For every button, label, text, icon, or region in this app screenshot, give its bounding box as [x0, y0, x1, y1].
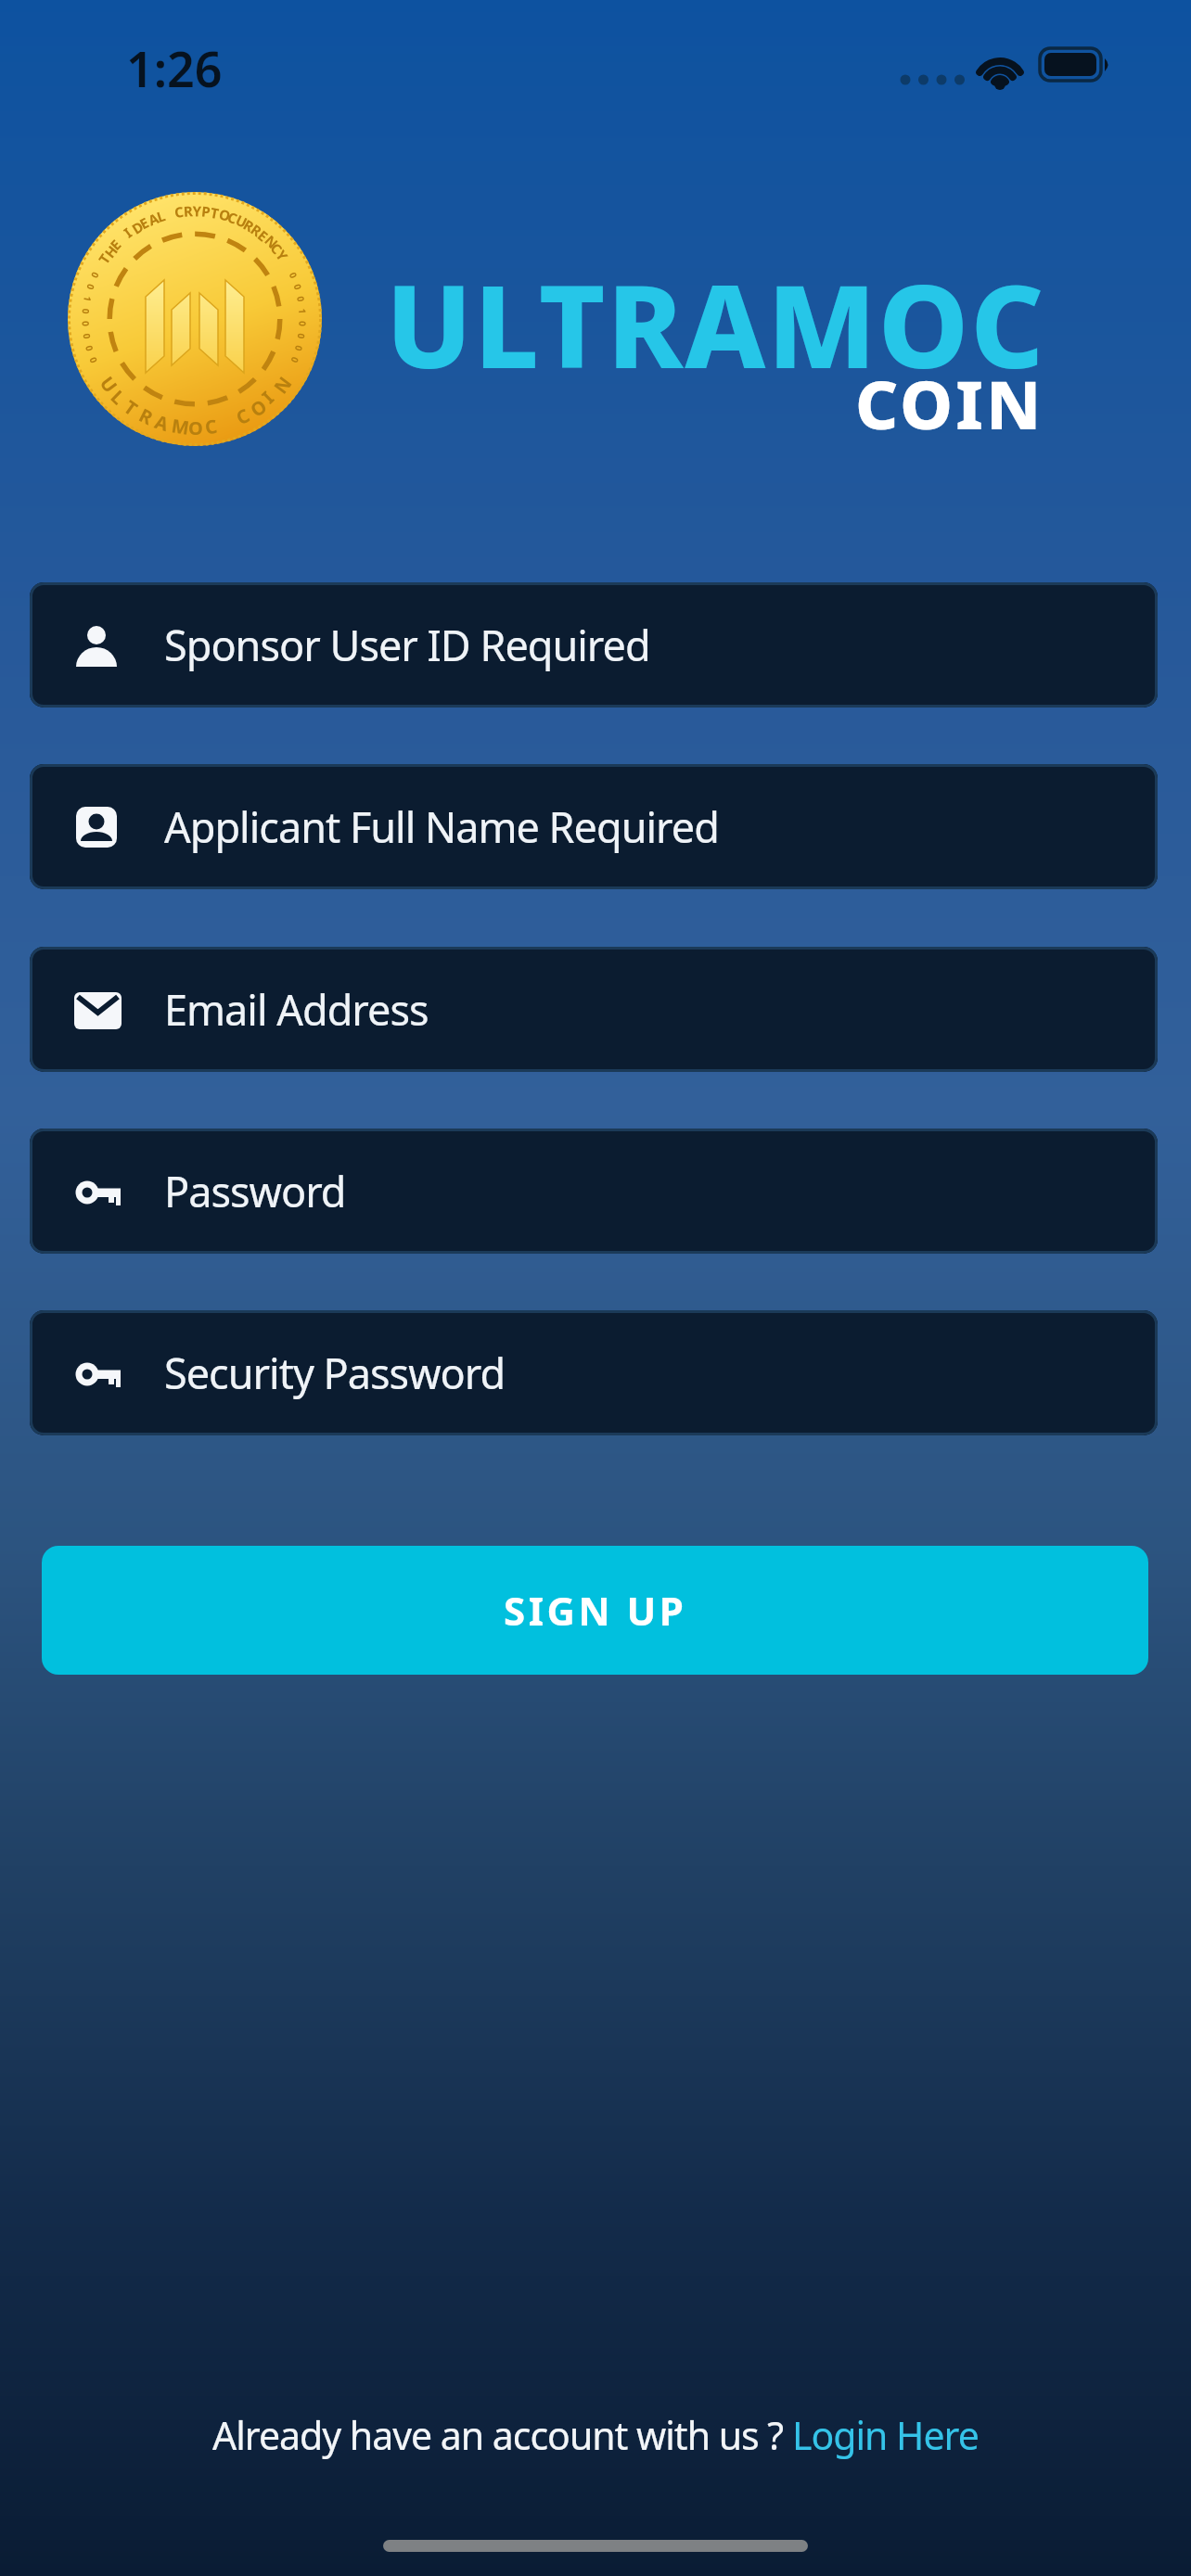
- button[interactable]: Password: [30, 1129, 1158, 1254]
- staticText: 1: [296, 308, 309, 315]
- staticText: COIN: [855, 358, 1044, 449]
- staticText: E: [254, 226, 273, 245]
- staticText: 0: [295, 332, 308, 340]
- staticText: O: [217, 204, 233, 225]
- staticText: 0: [79, 321, 92, 327]
- staticText: L: [154, 206, 168, 226]
- staticText: 0: [83, 344, 97, 353]
- button[interactable]: Applicant Full Name Required: [30, 764, 1158, 889]
- staticText: Security Password: [164, 1345, 506, 1401]
- staticText: R: [247, 220, 266, 240]
- staticText: 0: [88, 270, 102, 281]
- staticText: C: [225, 207, 240, 228]
- staticText: T: [209, 203, 221, 223]
- staticText: 0: [84, 282, 98, 292]
- staticText: U: [95, 371, 124, 398]
- staticText: C: [203, 413, 219, 440]
- staticText: Email Address: [164, 981, 429, 1038]
- staticText: C: [232, 403, 254, 430]
- staticText: R: [183, 201, 193, 221]
- staticText: 1:26: [126, 35, 223, 101]
- staticText: 0: [87, 355, 101, 365]
- button[interactable]: Security Password: [30, 1310, 1158, 1435]
- staticText: A: [145, 208, 162, 230]
- staticText: N: [261, 231, 283, 253]
- staticText: Y: [192, 201, 202, 220]
- staticText: 0: [79, 308, 93, 315]
- staticText: Password: [164, 1163, 346, 1219]
- staticText: E: [106, 235, 125, 254]
- staticText: O: [188, 415, 203, 440]
- staticText: Already have an account with us ?: [212, 2409, 792, 2461]
- staticText: E: [136, 213, 152, 233]
- staticText: R: [240, 215, 258, 236]
- staticText: 0: [296, 321, 309, 327]
- staticText: 1: [81, 295, 95, 303]
- staticText: T: [119, 395, 143, 421]
- staticText: I: [120, 223, 135, 241]
- staticText: SIGN UP: [504, 1584, 687, 1637]
- staticText: R: [135, 402, 158, 431]
- staticText: Login Here: [792, 2409, 979, 2461]
- button[interactable]: SIGN UP: [42, 1546, 1148, 1675]
- staticText: L: [106, 384, 131, 410]
- staticText: 0: [80, 332, 94, 340]
- staticText: H: [100, 241, 122, 261]
- staticText: N: [268, 371, 298, 399]
- button[interactable]: Email Address: [30, 947, 1158, 1072]
- button[interactable]: Sponsor User ID Required: [30, 582, 1158, 708]
- staticText: I: [256, 386, 279, 409]
- staticText: 0: [288, 355, 302, 365]
- staticText: C: [173, 202, 185, 222]
- staticText: M: [170, 413, 191, 440]
- staticText: ULTRAMOC: [386, 247, 1046, 402]
- staticText: Y: [272, 246, 293, 265]
- staticText: 0: [286, 270, 301, 281]
- staticText: 0: [294, 295, 308, 303]
- staticText: T: [94, 250, 114, 267]
- staticText: Applicant Full Name Required: [164, 798, 719, 855]
- staticText: A: [152, 409, 172, 437]
- staticText: U: [233, 210, 251, 232]
- staticText: O: [245, 393, 272, 422]
- staticText: 0: [291, 282, 305, 292]
- staticText: Sponsor User ID Required: [164, 617, 650, 673]
- staticText: 0: [292, 344, 306, 353]
- staticText: D: [128, 217, 147, 238]
- staticText: C: [267, 239, 287, 258]
- staticText: P: [201, 202, 212, 221]
- button[interactable]: Login Here: [792, 2409, 979, 2461]
